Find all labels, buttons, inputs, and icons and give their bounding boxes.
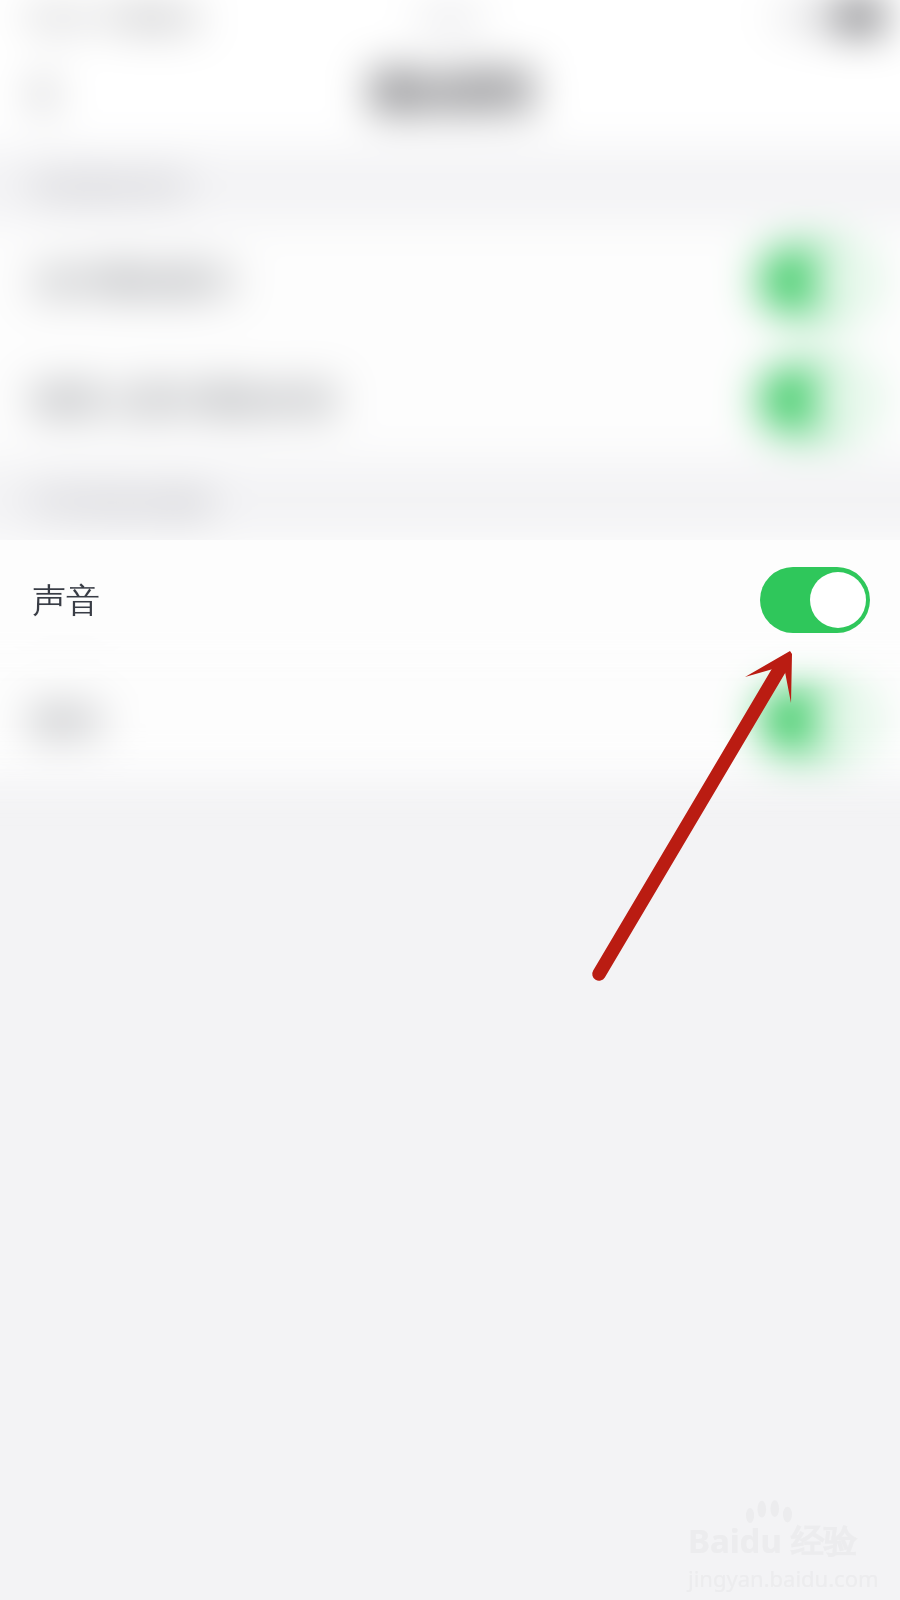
staticText: Baidu 经验 xyxy=(688,1518,857,1563)
staticText: 振动 xyxy=(32,699,100,742)
staticText: 声音 xyxy=(32,579,100,622)
button[interactable]: 允许通知显示 xyxy=(0,222,900,340)
button[interactable]: Sound toggle xyxy=(760,687,870,753)
button[interactable]: Sound toggle xyxy=(760,367,870,433)
button[interactable]: 锁屏上显示通知内容 xyxy=(0,340,900,460)
button[interactable]: 声音 xyxy=(0,540,900,660)
staticText: 10:24 中国移动 xyxy=(22,0,199,34)
button[interactable]: Sound toggle xyxy=(760,248,870,314)
button[interactable]: 声音 xyxy=(0,540,900,660)
staticText: 锁屏上显示通知内容 xyxy=(32,379,338,422)
button[interactable]: Sound toggle xyxy=(760,567,870,633)
staticText: 通知管理 xyxy=(368,68,532,120)
staticText: 允许通知显示 xyxy=(32,260,236,303)
button[interactable]: 振动 xyxy=(0,660,900,780)
staticText: 声音 xyxy=(32,579,100,622)
